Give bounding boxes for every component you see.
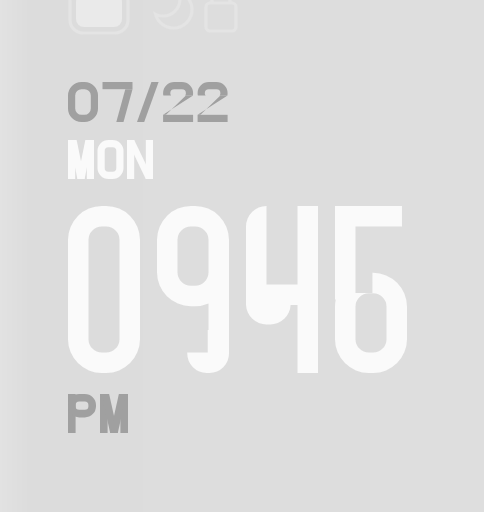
- other: Watch face: 09:45 PM, Monday 07/22: [0, 0, 484, 512]
- button[interactable]: Watch face: 09:45 PM, Monday 07/22: [0, 0, 484, 512]
